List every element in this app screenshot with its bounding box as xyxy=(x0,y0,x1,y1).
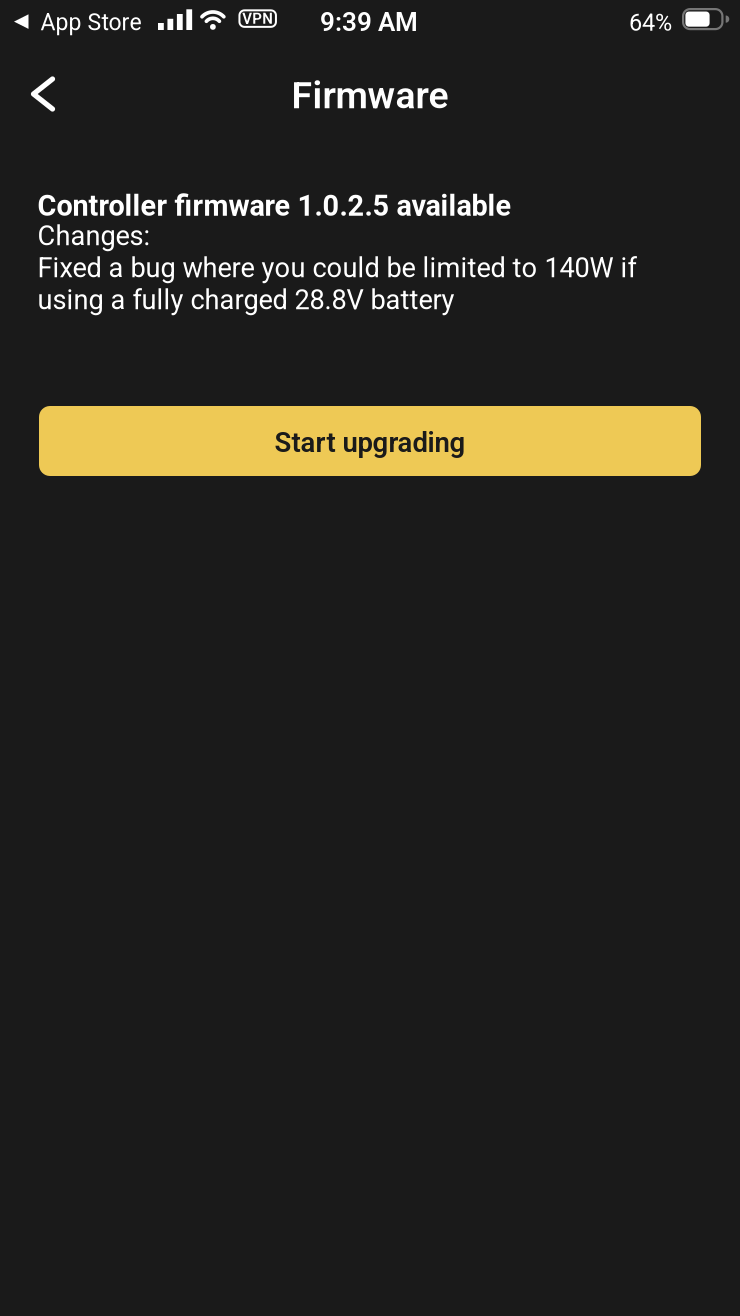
staticText: Start upgrading xyxy=(274,426,465,459)
staticText: Firmware xyxy=(291,74,448,117)
staticText: 9:39 AM xyxy=(320,7,418,37)
staticText: using a fully charged 28.8V battery xyxy=(37,284,454,316)
staticText: 64% xyxy=(629,9,672,36)
button[interactable]: Back xyxy=(28,73,57,115)
staticText: App Store xyxy=(40,9,141,36)
button[interactable]: Start upgrading xyxy=(39,406,701,476)
staticText: Changes: xyxy=(37,220,150,252)
staticText: Controller firmware 1.0.2.5 available xyxy=(37,189,511,223)
staticText: Fixed a bug where you could be limited t… xyxy=(37,252,636,284)
staticText: VPN xyxy=(242,10,273,27)
